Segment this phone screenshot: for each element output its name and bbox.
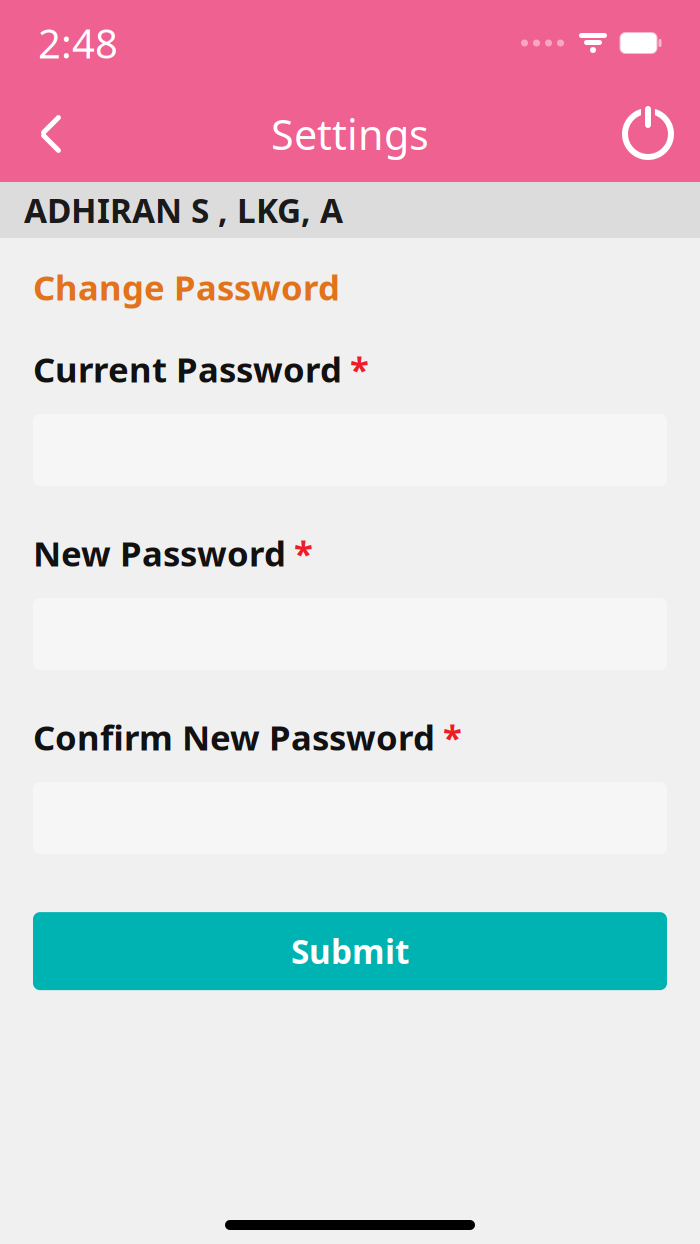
button[interactable]: Log out — [610, 96, 686, 172]
staticText: Settings — [271, 107, 429, 161]
staticText: Current Password — [33, 346, 342, 392]
button[interactable]: Submit — [33, 912, 667, 990]
button[interactable]: Back — [14, 96, 88, 172]
staticText: Confirm New Password — [33, 714, 435, 760]
staticText: New Password — [33, 530, 286, 576]
staticText: * — [443, 714, 462, 760]
staticText: Submit — [291, 929, 409, 973]
staticText: ADHIRAN S , LKG, A — [24, 188, 343, 232]
staticText: 2:48 — [38, 16, 118, 69]
staticText: Change Password — [33, 264, 340, 310]
staticText: * — [294, 530, 313, 576]
staticText: * — [350, 346, 369, 392]
